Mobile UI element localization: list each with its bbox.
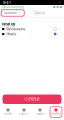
staticText: Saved [36,112,44,115]
button[interactable]: Restaurants [0,26,64,31]
button[interactable]: Saved [34,107,46,117]
staticText: Explore [19,112,29,115]
button[interactable]: Hotels [0,31,64,36]
staticText: Home [4,112,12,115]
staticText: Profile [51,112,61,115]
button[interactable]: Cancel [34,11,45,15]
button[interactable]: Explore [18,107,30,117]
staticText: Continue [24,97,39,101]
staticText: Hotels [7,32,17,36]
button[interactable]: Continue [2,94,61,104]
button[interactable]: Profile [50,107,62,117]
staticText: Cancel [34,11,45,15]
staticText: Good morning [2,5,24,9]
staticText: Restaurants [7,27,26,31]
button[interactable]: Home [2,107,14,117]
staticText: ··· [58,0,61,5]
button[interactable] [1,10,24,16]
staticText: Nearby [2,22,15,26]
staticText: 9:41 [3,0,11,5]
